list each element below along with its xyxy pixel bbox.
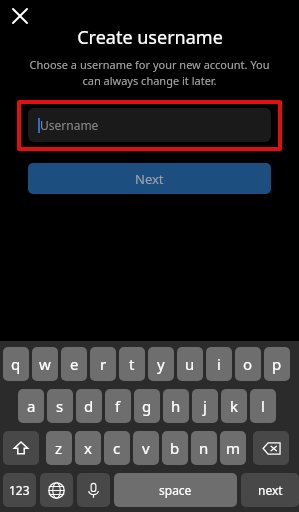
button[interactable]: p [264, 347, 290, 381]
staticText: s [56, 396, 64, 416]
staticText: z [55, 438, 63, 458]
button[interactable]: q [3, 347, 29, 381]
button[interactable]: t [119, 347, 145, 381]
button[interactable]: k [221, 389, 247, 423]
button[interactable]: a [18, 389, 44, 423]
button[interactable]: next [241, 473, 299, 507]
button[interactable]: x [75, 431, 101, 465]
staticText: q [11, 354, 21, 374]
button[interactable]: z [46, 431, 72, 465]
button[interactable]: Close [6, 2, 34, 30]
staticText: a [27, 396, 36, 416]
staticText: v [142, 438, 150, 458]
button[interactable]: f [105, 389, 131, 423]
button[interactable]: 123 [3, 473, 36, 507]
staticText: c [113, 438, 121, 458]
button[interactable]: Voice input [77, 473, 110, 507]
staticText: space [159, 482, 192, 498]
button[interactable]: d [76, 389, 102, 423]
staticText: f [115, 396, 121, 416]
button[interactable]: i [206, 347, 232, 381]
button[interactable]: v [133, 431, 159, 465]
button[interactable]: h [163, 389, 189, 423]
staticText: t [129, 354, 135, 374]
button[interactable]: e [61, 347, 87, 381]
staticText: l [261, 396, 265, 416]
staticText: n [199, 438, 209, 458]
button[interactable]: c [104, 431, 130, 465]
button[interactable]: l [250, 389, 276, 423]
button[interactable]: Username [28, 108, 271, 142]
button[interactable]: space [114, 473, 237, 507]
button[interactable]: o [235, 347, 261, 381]
button[interactable]: s [47, 389, 73, 423]
staticText: 123 [9, 482, 30, 498]
staticText: Next [135, 170, 164, 188]
button[interactable]: w [32, 347, 58, 381]
staticText: e [70, 354, 79, 374]
button[interactable]: Change language [40, 473, 73, 507]
button[interactable]: Shift [3, 431, 39, 465]
staticText: m [226, 438, 241, 458]
button[interactable]: Next [28, 163, 271, 194]
staticText: b [170, 438, 180, 458]
button[interactable]: m [220, 431, 246, 465]
staticText: Username [40, 117, 99, 133]
staticText: i [217, 354, 221, 374]
staticText: next [258, 482, 283, 498]
staticText: d [84, 396, 94, 416]
staticText: j [203, 396, 207, 416]
staticText: y [157, 354, 165, 374]
button[interactable]: g [134, 389, 160, 423]
staticText: k [230, 396, 239, 416]
button[interactable]: j [192, 389, 218, 423]
staticText: p [272, 354, 282, 374]
staticText: o [243, 354, 253, 374]
staticText: Create username [77, 25, 223, 50]
button[interactable]: b [162, 431, 188, 465]
button[interactable]: n [191, 431, 217, 465]
staticText: w [39, 354, 51, 374]
button[interactable]: u [177, 347, 203, 381]
staticText: x [84, 438, 92, 458]
button[interactable]: Backspace [253, 431, 289, 465]
staticText: r [100, 354, 107, 374]
staticText: Choose a username for your new account. … [26, 57, 273, 88]
button[interactable]: r [90, 347, 116, 381]
staticText: u [185, 354, 195, 374]
button[interactable]: y [148, 347, 174, 381]
staticText: h [171, 396, 181, 416]
staticText: g [142, 396, 152, 416]
